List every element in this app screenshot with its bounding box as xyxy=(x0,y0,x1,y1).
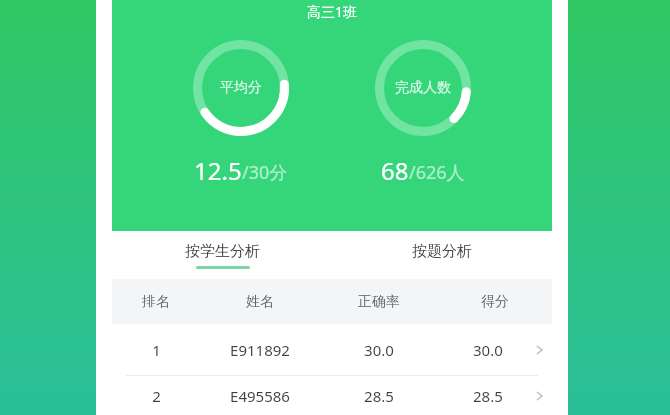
staticText: E911892 xyxy=(230,340,290,360)
staticText: 30.0 xyxy=(364,340,394,360)
button[interactable]: 1 xyxy=(112,324,552,376)
staticText: 高三1班 xyxy=(307,2,358,21)
staticText: 1 xyxy=(152,340,161,360)
staticText: 12.5 xyxy=(194,154,242,187)
staticText: 平均分 xyxy=(220,79,262,97)
staticText: 按学生分析 xyxy=(185,242,260,261)
button[interactable]: 按题分析 xyxy=(332,231,552,279)
other: View details xyxy=(532,389,546,403)
staticText: 完成人数 xyxy=(395,79,451,97)
staticText: 排名 xyxy=(142,293,170,311)
staticText: 28.5 xyxy=(364,386,394,406)
staticText: 得分 xyxy=(481,293,509,311)
staticText: E495586 xyxy=(230,386,290,406)
button[interactable]: 按学生分析 xyxy=(112,231,332,279)
staticText: 2 xyxy=(152,386,161,406)
other: View details xyxy=(532,343,546,357)
staticText: 68 xyxy=(381,154,409,187)
staticText: 姓名 xyxy=(246,293,274,311)
staticText: /30分 xyxy=(242,160,288,185)
staticText: 28.5 xyxy=(473,386,503,406)
button[interactable]: 2 xyxy=(112,376,552,415)
staticText: 30.0 xyxy=(473,340,503,360)
staticText: 正确率 xyxy=(358,293,400,311)
staticText: 按题分析 xyxy=(412,242,472,261)
staticText: /626人 xyxy=(409,160,465,185)
